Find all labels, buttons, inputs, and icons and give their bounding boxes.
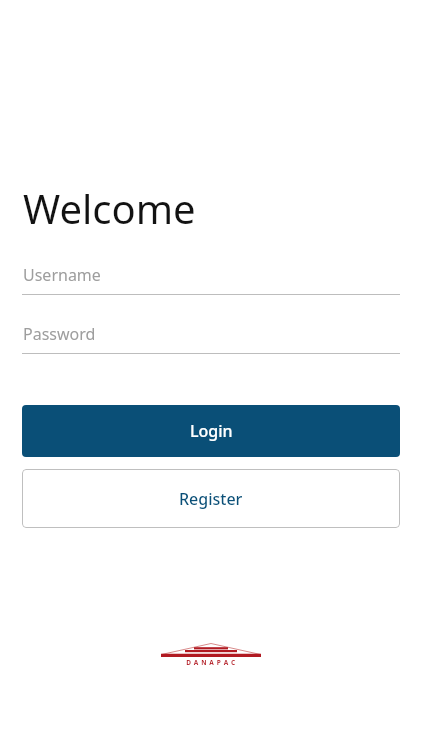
- staticText: D A N A P A C: [186, 658, 236, 667]
- button[interactable]: Register: [22, 469, 400, 528]
- staticText: Password: [23, 323, 96, 345]
- staticText: Login: [190, 420, 233, 442]
- staticText: Welcome: [23, 181, 196, 235]
- staticText: Register: [179, 488, 243, 510]
- other: DANAPAC logo: [161, 643, 261, 668]
- button[interactable]: Username: [0, 256, 422, 294]
- staticText: Username: [23, 264, 101, 286]
- button[interactable]: Login: [22, 405, 400, 457]
- button[interactable]: Password: [0, 315, 422, 353]
